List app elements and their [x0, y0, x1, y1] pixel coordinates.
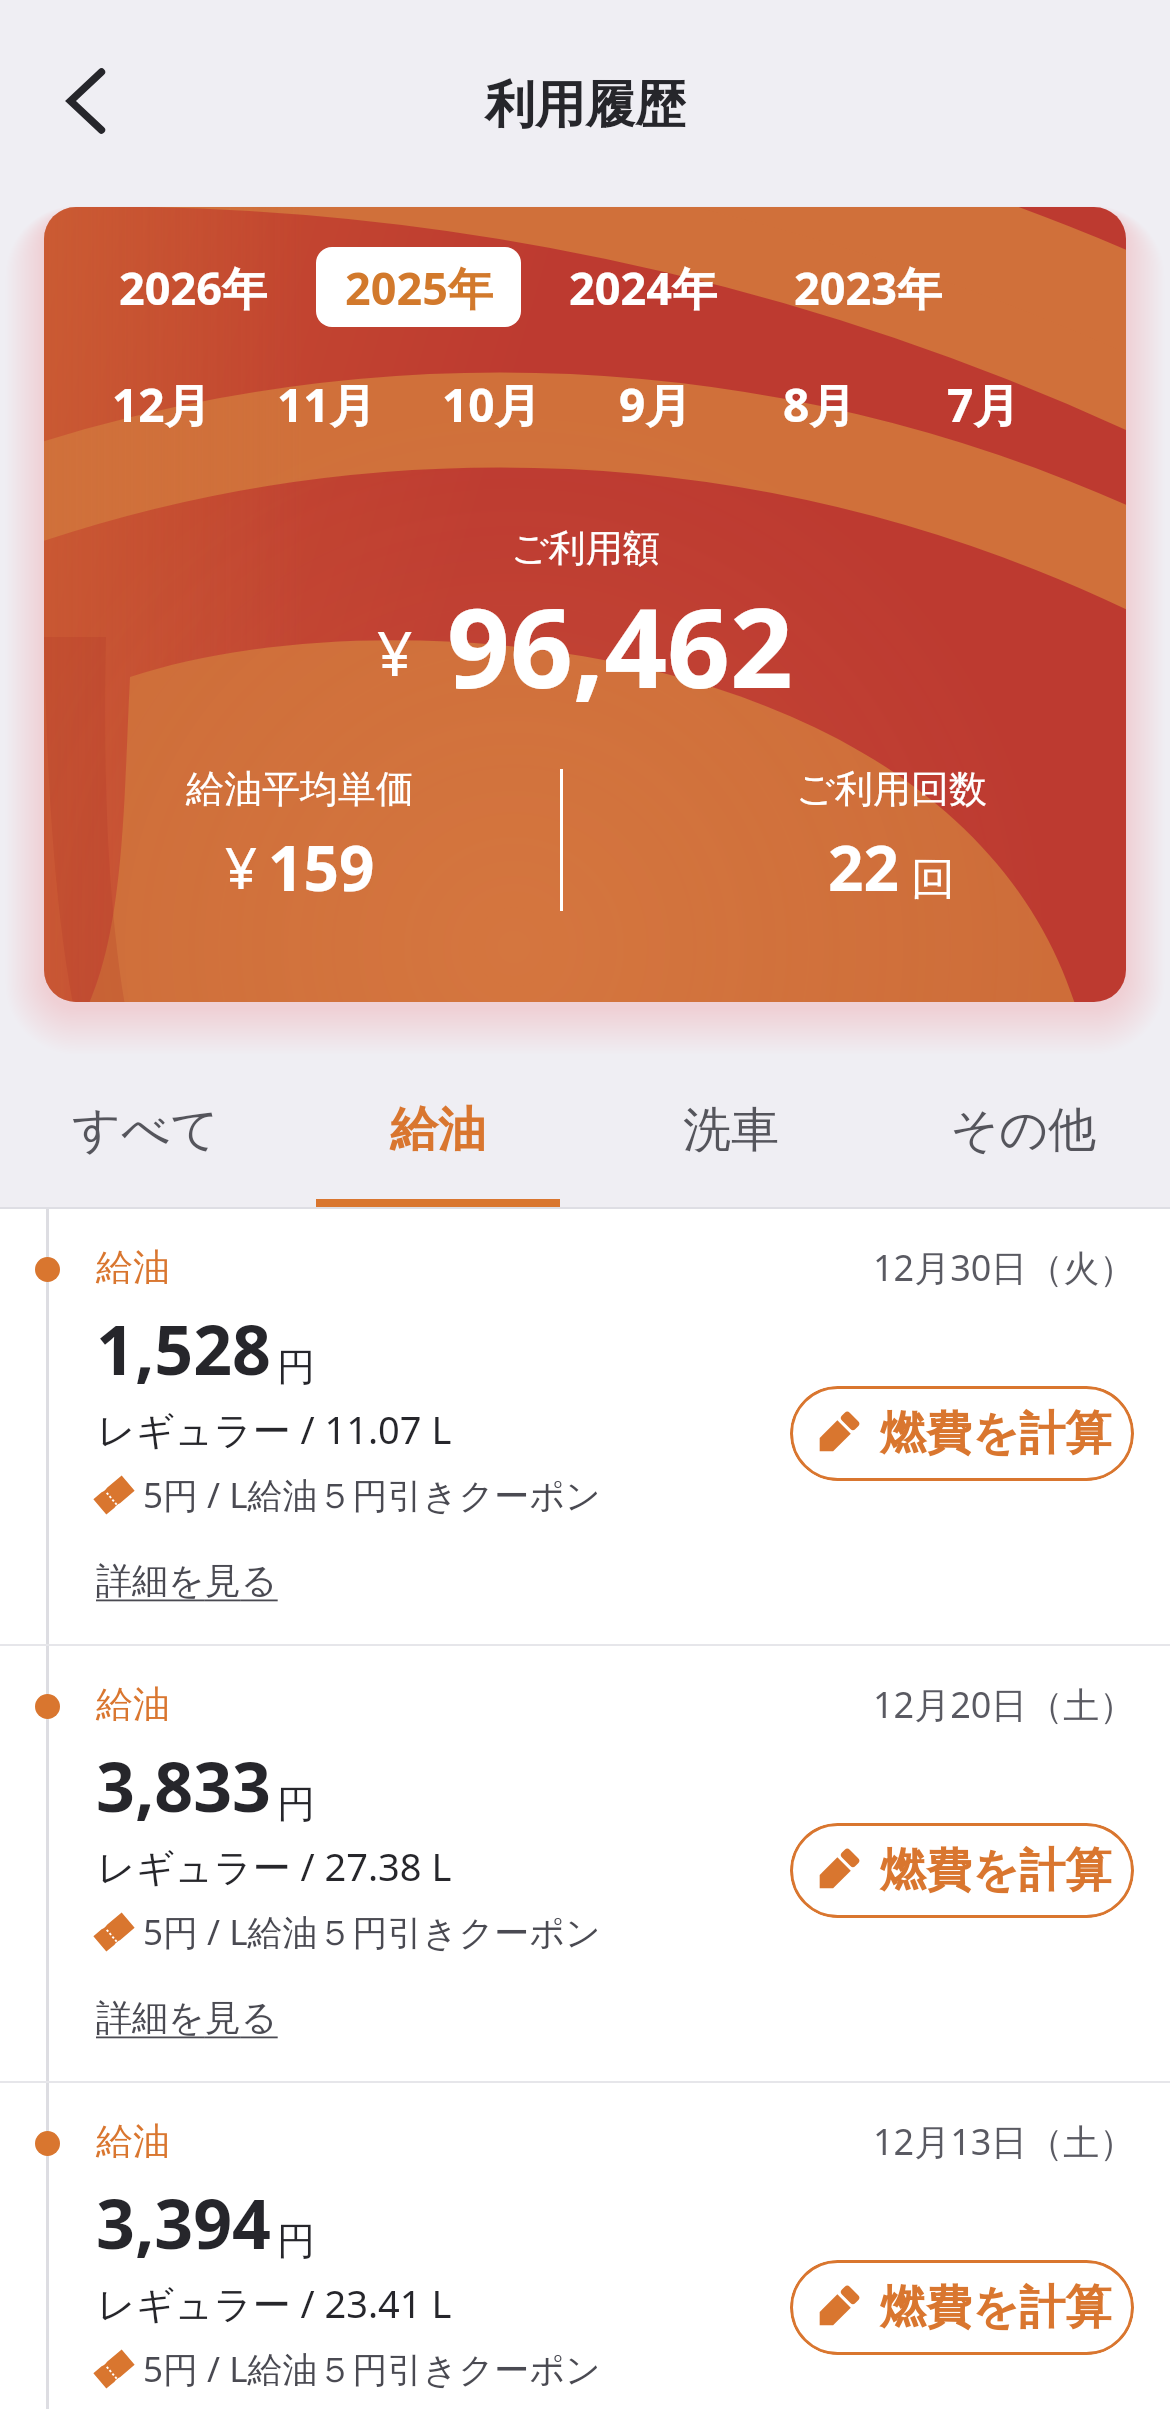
- button[interactable]: 燃費を計算: [790, 1386, 1134, 1481]
- button[interactable]: 2024年: [540, 247, 745, 327]
- button[interactable]: 9月: [573, 369, 737, 439]
- staticText: 2025年: [345, 257, 493, 318]
- staticText: 3,833: [96, 1739, 271, 1832]
- staticText: ご利用回数: [796, 765, 987, 813]
- staticText: ¥: [377, 610, 413, 694]
- staticText: 7月: [947, 373, 1020, 436]
- button[interactable]: 給油: [0, 2083, 1170, 2409]
- staticText: 12月20日（土）: [873, 1680, 1136, 1729]
- staticText: 9月: [619, 373, 692, 436]
- staticText: 回: [911, 852, 955, 907]
- staticText: 給油: [96, 1681, 170, 1728]
- staticText: すべて: [72, 1100, 220, 1160]
- staticText: 5円 / L給油５円引きクーポン: [143, 2345, 601, 2393]
- button[interactable]: 8月: [737, 369, 901, 439]
- button[interactable]: 12月: [79, 369, 244, 439]
- staticText: 燃費を計算: [880, 1405, 1112, 1463]
- staticText: 燃費を計算: [880, 1842, 1112, 1900]
- staticText: レギュラー / 27.38 L: [97, 1840, 452, 1892]
- staticText: 円: [277, 1780, 315, 1828]
- button[interactable]: すべて: [0, 1061, 292, 1207]
- button[interactable]: 2026年: [90, 247, 295, 327]
- staticText: 12月13日（土）: [873, 2117, 1136, 2166]
- button[interactable]: 給油: [292, 1061, 584, 1207]
- staticText: 円: [277, 2217, 315, 2265]
- button[interactable]: 洗車: [584, 1061, 877, 1207]
- staticText: 5円 / L給油５円引きクーポン: [143, 1471, 601, 1519]
- button[interactable]: 10月: [409, 369, 573, 439]
- button[interactable]: 詳細を見る: [96, 1558, 278, 1603]
- button[interactable]: 詳細を見る: [96, 1995, 278, 2040]
- staticText: レギュラー / 23.41 L: [97, 2277, 452, 2329]
- staticText: 給油平均単価: [186, 765, 414, 813]
- staticText: 5円 / L給油５円引きクーポン: [143, 1908, 601, 1956]
- staticText: 1,528: [96, 1302, 271, 1395]
- button[interactable]: Back: [46, 58, 132, 144]
- staticText: 22: [828, 825, 899, 909]
- staticText: 給油: [96, 1244, 170, 1291]
- button[interactable]: 給油: [0, 1209, 1170, 1644]
- button[interactable]: その他: [877, 1061, 1170, 1207]
- staticText: 3,394: [96, 2176, 271, 2269]
- staticText: 洗車: [683, 1100, 779, 1160]
- staticText: レギュラー / 11.07 L: [97, 1403, 452, 1455]
- staticText: 159: [268, 825, 375, 909]
- button[interactable]: 燃費を計算: [790, 1823, 1134, 1918]
- staticText: 12月30日（火）: [873, 1243, 1136, 1292]
- button[interactable]: 給油: [0, 1646, 1170, 2081]
- staticText: 燃費を計算: [880, 2279, 1112, 2337]
- staticText: 利用履歴: [485, 74, 685, 137]
- staticText: 10月: [442, 373, 541, 436]
- staticText: 給油: [96, 2118, 170, 2165]
- staticText: 給油: [390, 1100, 486, 1160]
- staticText: 8月: [783, 373, 856, 436]
- staticText: その他: [950, 1100, 1097, 1160]
- staticText: 96,462: [447, 570, 793, 720]
- button[interactable]: 燃費を計算: [790, 2260, 1134, 2355]
- staticText: 2026年: [119, 257, 267, 318]
- staticText: 円: [277, 1343, 315, 1391]
- staticText: 11月: [277, 373, 376, 436]
- staticText: 12月: [112, 373, 211, 436]
- staticText: ¥: [225, 829, 258, 905]
- button[interactable]: 11月: [244, 369, 409, 439]
- staticText: 2023年: [794, 257, 942, 318]
- button[interactable]: 2023年: [765, 247, 970, 327]
- staticText: 2024年: [569, 257, 717, 318]
- staticText: ご利用額: [511, 525, 660, 572]
- button[interactable]: 7月: [901, 369, 1065, 439]
- button[interactable]: 2025年: [316, 247, 521, 327]
